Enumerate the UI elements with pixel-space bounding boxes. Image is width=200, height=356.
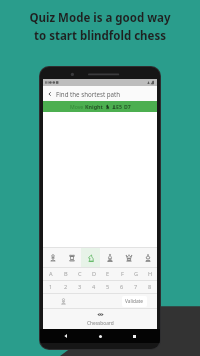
staticText: D (92, 270, 97, 278)
button[interactable]: 2 (58, 281, 73, 293)
staticText: D7 (124, 103, 131, 110)
button[interactable]: Validate (122, 296, 147, 307)
staticText: C (78, 270, 82, 278)
staticText: 1 (49, 283, 53, 291)
button[interactable]: C (73, 268, 87, 280)
button[interactable]: Bishop (100, 248, 119, 267)
staticText: F (121, 270, 124, 278)
button[interactable]: Back (43, 86, 56, 101)
button[interactable]: Rook (62, 248, 81, 267)
button[interactable]: D (87, 268, 101, 280)
staticText: 5 (106, 283, 110, 291)
button[interactable]: 8 (143, 281, 157, 293)
button[interactable]: Queen (119, 248, 138, 267)
staticText: G (134, 270, 139, 278)
staticText: 4 (92, 283, 96, 291)
staticText: B (64, 270, 68, 278)
staticText: A (49, 270, 53, 278)
button[interactable]: 7 (129, 281, 143, 293)
staticText: 2 (64, 283, 68, 291)
button[interactable]: E (101, 268, 115, 280)
button[interactable]: Selected piece (57, 295, 69, 307)
button[interactable]: Home (95, 331, 105, 341)
button[interactable]: G (129, 268, 143, 280)
staticText: to start blindfold chess (34, 28, 166, 44)
staticText: Find the shortest path (56, 90, 121, 98)
staticText: Quiz Mode is a good way (29, 10, 171, 26)
button[interactable]: Knight (81, 248, 100, 267)
button[interactable]: 6 (115, 281, 129, 293)
button[interactable]: B (58, 268, 73, 280)
staticText: E (106, 270, 110, 278)
staticText: Chessboard (87, 320, 114, 327)
staticText: 6 (120, 283, 124, 291)
button[interactable]: Recent apps (129, 331, 139, 341)
staticText: 3 (78, 283, 82, 291)
button[interactable]: 5 (101, 281, 115, 293)
button[interactable]: H (143, 268, 157, 280)
staticText: H (148, 270, 153, 278)
button[interactable]: Back (61, 331, 71, 341)
staticText: Knight (85, 103, 103, 110)
button[interactable]: Chessboard (43, 309, 157, 329)
button[interactable]: Move (43, 101, 157, 112)
button[interactable]: 4 (87, 281, 101, 293)
staticText: 7 (134, 283, 138, 291)
button[interactable]: 3 (73, 281, 87, 293)
button[interactable]: A (43, 268, 58, 280)
button[interactable]: 1 (43, 281, 58, 293)
staticText: Validate (125, 298, 144, 305)
button[interactable]: F (115, 268, 129, 280)
staticText: Move (70, 103, 85, 110)
button[interactable]: King (138, 248, 157, 267)
staticText: 8 (148, 283, 152, 291)
button[interactable]: Pawn (43, 248, 62, 267)
staticText: E5 (116, 103, 122, 110)
